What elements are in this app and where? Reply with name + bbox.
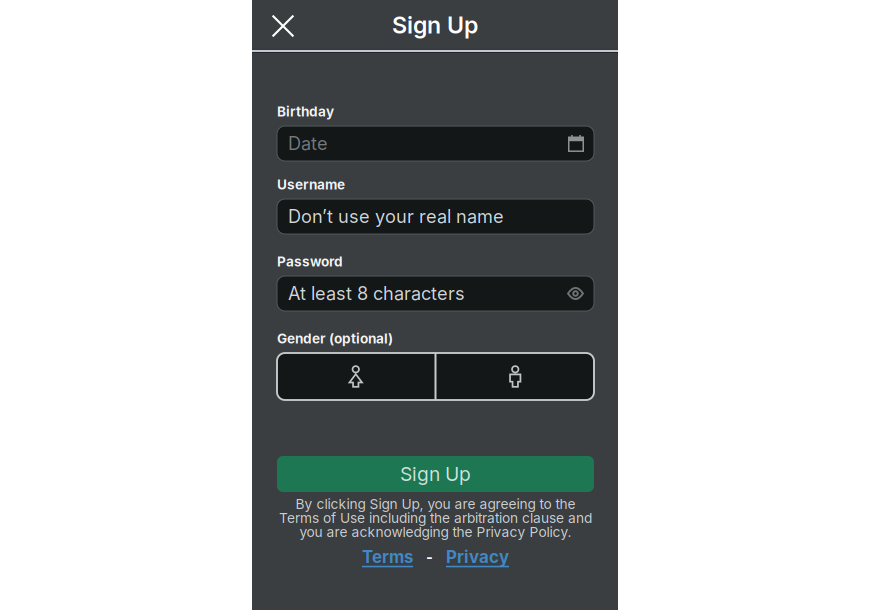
staticText: Privacy: [446, 547, 509, 567]
staticText: Birthday: [277, 103, 334, 120]
button[interactable]: Don’t use your real name: [277, 199, 594, 234]
staticText: Gender (optional): [277, 330, 393, 347]
button[interactable]: Female: [277, 353, 434, 400]
button[interactable]: Privacy: [446, 547, 509, 567]
staticText: Date: [288, 132, 328, 154]
staticText: Sign Up: [400, 462, 471, 486]
staticText: Terms: [362, 547, 413, 567]
button[interactable]: Male: [436, 353, 594, 400]
staticText: At least 8 characters: [288, 282, 465, 304]
staticText: -: [426, 548, 433, 566]
button[interactable]: Date: [277, 126, 594, 161]
button[interactable]: Close: [261, 4, 305, 48]
staticText: Sign Up: [392, 11, 478, 39]
staticText: Password: [277, 253, 343, 270]
button[interactable]: Terms: [362, 547, 413, 567]
staticText: By clicking Sign Up, you are agreeing to…: [295, 496, 575, 512]
button[interactable]: At least 8 characters: [277, 276, 594, 311]
staticText: Terms of Use including the arbitration c…: [279, 510, 592, 526]
staticText: Don’t use your real name: [288, 205, 504, 227]
button[interactable]: Sign Up: [277, 456, 594, 492]
staticText: you are acknowledging the Privacy Policy…: [299, 524, 571, 540]
staticText: Username: [277, 176, 345, 193]
